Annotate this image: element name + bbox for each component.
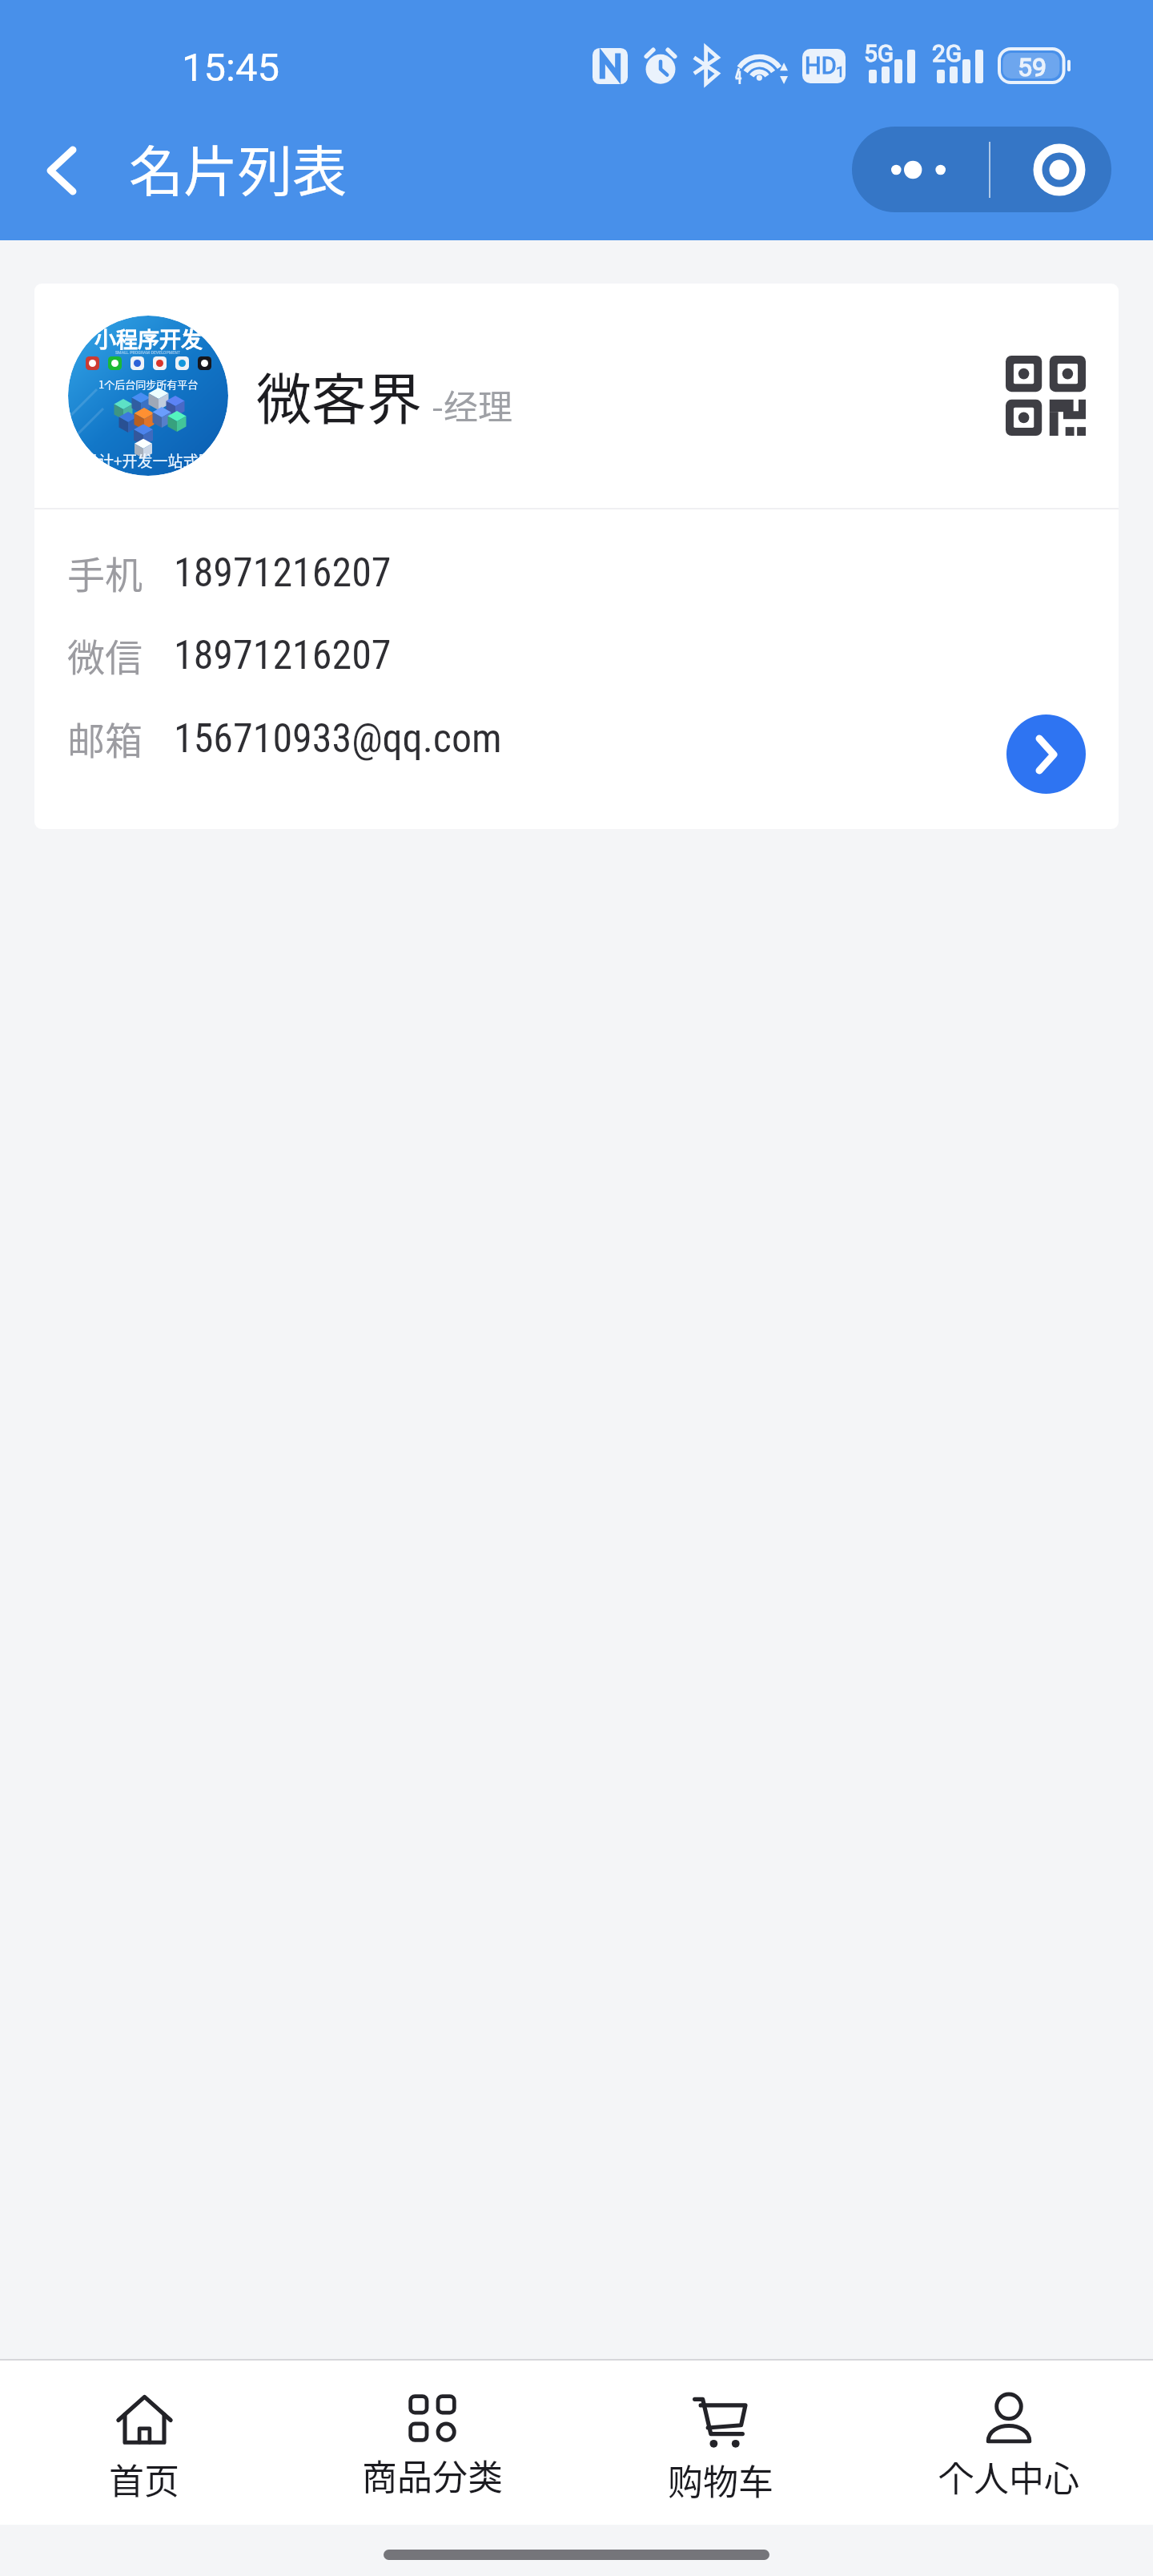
staticText: 个人中心 xyxy=(938,2451,1079,2502)
button[interactable]: More options xyxy=(852,127,989,212)
button[interactable]: Open detail xyxy=(1006,714,1086,794)
button[interactable]: 首页 xyxy=(0,2361,288,2525)
button[interactable]: 小程序开发 xyxy=(34,284,1119,829)
staticText: 2G xyxy=(932,39,962,67)
staticText: 邮箱 xyxy=(67,710,143,765)
staticText: 18971216207 xyxy=(174,549,392,597)
button[interactable]: 个人中心 xyxy=(865,2361,1153,2525)
staticText: 名片列表 xyxy=(129,128,348,207)
staticText: 5G xyxy=(864,39,894,67)
staticText: 设计+开发一站式服 xyxy=(83,449,214,472)
staticText: 18971216207 xyxy=(174,632,392,679)
button[interactable]: Close mini program xyxy=(990,127,1111,212)
staticText: SMALL PROGRAM DEVELOPMENT xyxy=(115,349,181,355)
staticText: HD xyxy=(805,52,837,79)
staticText: 商品分类 xyxy=(362,2449,503,2501)
staticText: 手机 xyxy=(67,545,143,599)
staticText: 微信 xyxy=(67,627,143,682)
button[interactable]: Back xyxy=(26,135,98,207)
staticText: 15:45 xyxy=(182,45,280,91)
staticText: 首页 xyxy=(109,2453,179,2505)
staticText: 购物车 xyxy=(668,2454,773,2506)
staticText: 59 xyxy=(1018,52,1047,83)
staticText: 156710933@qq.com xyxy=(174,715,502,763)
staticText: 微客界 xyxy=(256,356,422,436)
staticText: 小程序开发 xyxy=(94,323,203,354)
button[interactable]: QR code xyxy=(996,346,1095,445)
staticText: 1 xyxy=(836,62,845,80)
button[interactable]: 购物车 xyxy=(576,2361,865,2525)
button[interactable]: 商品分类 xyxy=(288,2361,576,2525)
staticText: 1个后台同步所有平台 xyxy=(98,376,199,392)
staticText: -经理 xyxy=(432,380,512,429)
